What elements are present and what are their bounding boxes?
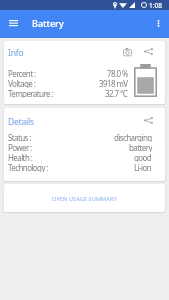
staticText: OPEN USAGE SUMMARY (52, 195, 117, 202)
staticText: good (134, 152, 152, 162)
staticText: 1:08 (149, 1, 162, 10)
staticText: discharging (114, 132, 152, 142)
staticText: 3918 mV (99, 78, 128, 88)
staticText: Li-ion (134, 162, 152, 172)
staticText: Temperature : (8, 88, 53, 98)
staticText: Battery (32, 17, 64, 29)
staticText: Health : (8, 152, 33, 162)
staticText: 32.7 °C (105, 88, 128, 98)
staticText: Status : (8, 132, 31, 142)
staticText: Details (8, 116, 34, 128)
button[interactable]: Navigation menu (4, 10, 23, 36)
staticText: battery (129, 142, 152, 152)
staticText: 78.0 % (107, 68, 128, 78)
button[interactable]: More options (149, 10, 167, 36)
staticText: Info (8, 47, 24, 59)
button[interactable]: Take screenshot (119, 45, 135, 58)
button[interactable]: OPEN USAGE SUMMARY (4, 184, 165, 212)
staticText: Percent : (8, 68, 36, 78)
staticText: Technology : (8, 162, 48, 172)
staticText: Voltage : (8, 78, 36, 88)
button[interactable]: Share (140, 114, 156, 127)
staticText: Power : (8, 142, 32, 152)
button[interactable]: Share (140, 45, 156, 58)
